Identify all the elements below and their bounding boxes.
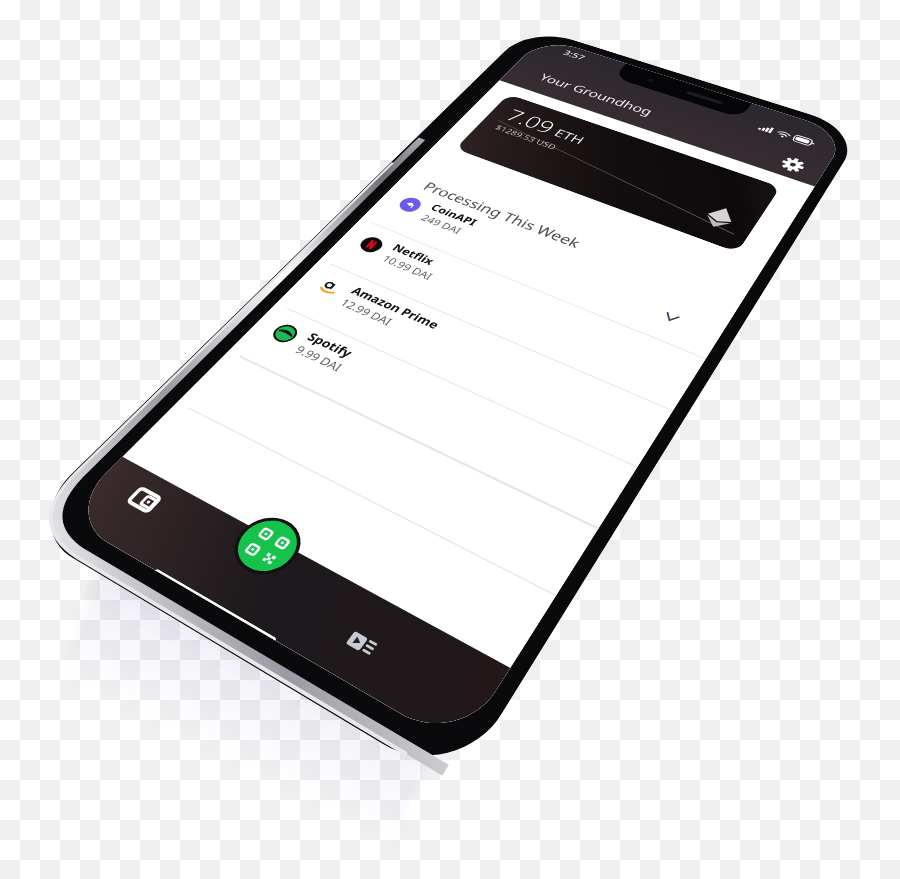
button[interactable]: Spotify: [228, 304, 637, 529]
button[interactable]: Amazon Prime: [276, 260, 673, 467]
staticText: Spotify: [304, 329, 356, 361]
button[interactable]: Scan QR code: [226, 512, 309, 581]
staticText: 3:57: [561, 48, 588, 62]
staticText: Your Groundhog: [536, 71, 656, 119]
staticText: 249 DAI: [418, 212, 465, 237]
staticText: 7.09: [500, 104, 561, 138]
staticText: 10.99 DAI: [379, 252, 436, 283]
staticText: Processing This Week: [419, 178, 585, 252]
staticText: 9.99 DAI: [292, 342, 347, 375]
staticText: CoinAPI: [428, 201, 480, 228]
button[interactable]: Settings: [771, 150, 814, 178]
staticText: 12.99 DAI: [337, 296, 396, 328]
staticText: ETH: [550, 126, 589, 148]
button[interactable]: Wallet: [116, 478, 172, 522]
button[interactable]: Netflix: [320, 219, 706, 411]
button[interactable]: CoinAPI: [361, 180, 736, 359]
staticText: Amazon Prime: [348, 283, 444, 332]
button[interactable]: Transactions: [331, 617, 392, 671]
staticText: Netflix: [389, 241, 438, 268]
button[interactable]: 7.09: [455, 94, 781, 253]
staticText: $1289.53 USD: [493, 123, 559, 151]
